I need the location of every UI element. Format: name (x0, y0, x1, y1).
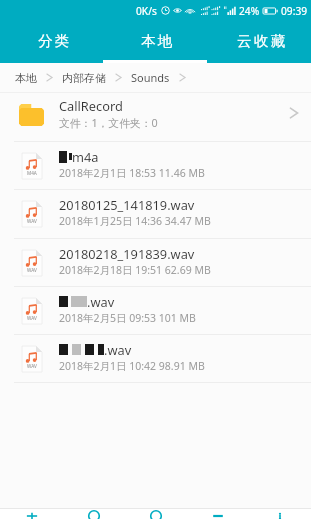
button[interactable]: Add (0, 509, 63, 519)
staticText: 文件：1，文件夹：0 (59, 115, 158, 130)
staticText: M4A (27, 170, 37, 176)
staticText: 2018年1月25日 14:36 34.47 MB (59, 214, 211, 228)
button[interactable]: 内部存储 (56, 71, 112, 85)
staticText: 本地 (141, 32, 175, 50)
staticText: WAV (27, 315, 37, 321)
staticText: m4a (72, 148, 99, 165)
button[interactable]: 本地 (103, 21, 207, 63)
staticText: WAV (27, 267, 37, 273)
button[interactable]: WAV (0, 335, 311, 382)
staticText: 分类 (38, 32, 72, 50)
button[interactable]: WAV (0, 287, 311, 334)
button[interactable]: More (249, 509, 311, 519)
staticText: 云收藏 (237, 32, 288, 50)
staticText: 本地 (15, 71, 37, 85)
staticText: 20180125_141819.wav (59, 196, 195, 213)
staticText: 0K/s (136, 4, 157, 18)
staticText: Sounds (131, 70, 170, 85)
button[interactable]: CallRecord (0, 93, 311, 141)
staticText: 2018年2月18日 19:51 62.69 MB (59, 263, 211, 277)
staticText: .wav (104, 341, 132, 358)
button[interactable]: Copy (63, 509, 125, 519)
staticText: WAV (27, 218, 37, 224)
staticText: 2018年2月1日 18:53 11.46 MB (59, 166, 205, 180)
staticText: 2018年2月5日 09:53 101 MB (59, 311, 196, 325)
button[interactable]: Move (125, 509, 187, 519)
button[interactable]: WAV (0, 190, 311, 238)
button[interactable]: Sounds (125, 70, 176, 85)
staticText: CallRecord (59, 97, 123, 114)
button[interactable]: 分类 (0, 21, 103, 63)
staticText: 09:39 (281, 4, 308, 18)
button[interactable]: 本地 (9, 71, 43, 85)
staticText: 内部存储 (62, 71, 106, 85)
button[interactable]: 云收藏 (207, 21, 311, 63)
staticText: 24% (239, 4, 260, 18)
button[interactable]: Delete (187, 509, 249, 519)
staticText: 20180218_191839.wav (59, 245, 195, 262)
staticText: 2018年2月1日 10:42 98.91 MB (59, 359, 205, 373)
staticText: .wav (87, 293, 115, 310)
staticText: WAV (27, 363, 37, 369)
button[interactable]: M4A (0, 142, 311, 189)
button[interactable]: WAV (0, 239, 311, 286)
